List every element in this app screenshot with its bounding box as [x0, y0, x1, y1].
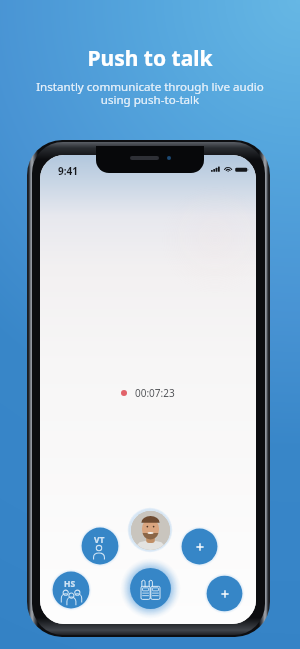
button[interactable]: Add contact: [120, 558, 181, 619]
staticText: 9:41: [58, 164, 78, 178]
button[interactable]: VT: [79, 525, 121, 567]
staticText: HS: [64, 578, 76, 589]
staticText: VT: [94, 534, 105, 545]
staticText: Push to talk: [87, 44, 213, 73]
button[interactable]: Add contact: [204, 573, 245, 614]
staticText: 00:07:23: [135, 386, 175, 400]
button[interactable]: Contact photo: [127, 507, 173, 553]
button[interactable]: Add contact: [179, 526, 220, 567]
button[interactable]: HS: [50, 569, 92, 611]
staticText: Instantly communicate through live audio…: [36, 79, 264, 108]
